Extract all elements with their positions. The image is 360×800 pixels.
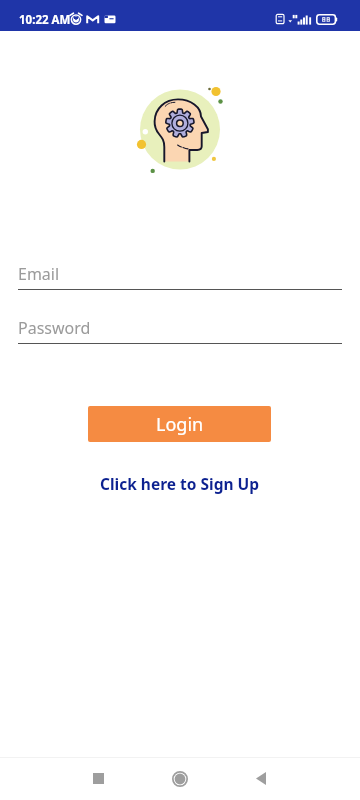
button[interactable]: Click here to Sign Up [94, 471, 266, 496]
button[interactable]: Home [152, 757, 208, 800]
button[interactable]: Login [88, 406, 271, 442]
staticText: Password [18, 317, 91, 339]
staticText: Email [18, 263, 60, 285]
staticText: 10:22 AM [19, 12, 71, 28]
button[interactable]: Back [233, 757, 288, 800]
button[interactable]: Recent apps [71, 757, 126, 800]
staticText: Click here to Sign Up [100, 473, 260, 494]
staticText: Login [156, 412, 204, 437]
